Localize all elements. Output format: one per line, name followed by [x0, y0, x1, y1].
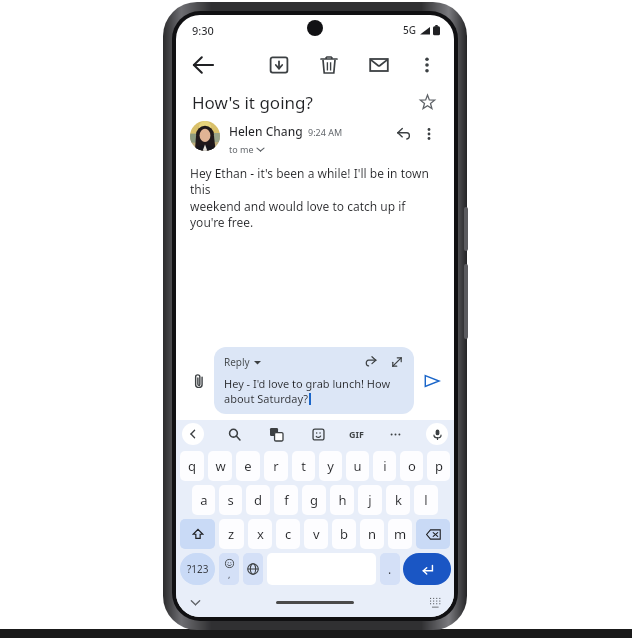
staticText: GIF	[349, 428, 364, 440]
button[interactable]: b	[332, 519, 356, 549]
staticText: weekend and would love to catch up if yo…	[190, 198, 440, 231]
button[interactable]: Shift	[180, 519, 215, 549]
staticText: c	[285, 525, 292, 543]
staticText: Helen Chang	[229, 123, 303, 139]
staticText: b	[340, 525, 348, 543]
staticText: 5G	[403, 23, 416, 37]
button[interactable]: Send	[418, 367, 446, 395]
staticText: n	[368, 525, 377, 543]
button[interactable]: Star	[414, 89, 440, 115]
button[interactable]: Emoji	[219, 553, 239, 585]
button[interactable]: j	[358, 485, 382, 515]
staticText: m	[394, 525, 407, 543]
staticText: Hey - I'd love to grab lunch! How	[224, 376, 391, 391]
button[interactable]: GIF	[349, 423, 364, 445]
button[interactable]: m	[388, 519, 412, 549]
staticText: to me	[229, 143, 254, 155]
button[interactable]: Mark unread	[364, 50, 394, 80]
staticText: o	[408, 457, 416, 475]
button[interactable]: Change language	[243, 553, 263, 585]
button[interactable]: Keyboard settings	[424, 591, 446, 613]
button[interactable]: l	[414, 485, 438, 515]
staticText: 9:30	[192, 23, 214, 38]
button[interactable]: s	[219, 485, 242, 515]
button[interactable]: n	[360, 519, 384, 549]
button[interactable]: Delete	[314, 50, 344, 80]
staticText: How's it going?	[192, 91, 313, 114]
staticText: e	[244, 457, 252, 475]
staticText: s	[227, 491, 234, 509]
button[interactable]: Attach file	[186, 368, 212, 394]
button[interactable]: z	[219, 519, 244, 549]
staticText: z	[228, 525, 235, 543]
staticText: p	[435, 457, 443, 475]
button[interactable]: h	[330, 485, 354, 515]
button[interactable]: u	[346, 451, 369, 481]
button[interactable]: f	[274, 485, 298, 515]
button[interactable]: x	[248, 519, 272, 549]
button[interactable]: d	[246, 485, 270, 515]
button[interactable]: Voice input	[426, 423, 448, 445]
button[interactable]: Reply	[390, 121, 416, 147]
staticText: l	[424, 491, 428, 509]
staticText: v	[313, 525, 320, 543]
button[interactable]: Archive	[264, 50, 294, 80]
button[interactable]: o	[400, 451, 423, 481]
button[interactable]: More	[384, 423, 406, 445]
button[interactable]: i	[373, 451, 396, 481]
staticText: w	[215, 457, 226, 475]
button[interactable]: Back	[182, 423, 204, 445]
button[interactable]: Hide keyboard	[184, 591, 206, 613]
button[interactable]: r	[264, 451, 288, 481]
button[interactable]: to me	[229, 143, 264, 155]
button[interactable]: w	[208, 451, 232, 481]
button[interactable]: Stickers	[307, 423, 329, 445]
button[interactable]: Back	[188, 50, 218, 80]
staticText: Hey Ethan - it's been a while! I'll be i…	[190, 165, 440, 198]
staticText: Reply	[224, 355, 250, 369]
button[interactable]: q	[180, 451, 204, 481]
button[interactable]: e	[236, 451, 260, 481]
button[interactable]: y	[319, 451, 342, 481]
staticText: a	[200, 491, 208, 509]
staticText: .	[388, 561, 392, 577]
button[interactable]: Reply	[214, 347, 414, 414]
staticText: f	[284, 491, 289, 509]
button[interactable]: More options	[416, 121, 442, 147]
staticText: q	[188, 457, 196, 475]
staticText: i	[383, 457, 387, 475]
staticText: ,	[228, 568, 231, 580]
staticText: u	[353, 457, 362, 475]
staticText: k	[395, 491, 402, 509]
staticText: 9:24 AM	[308, 126, 343, 138]
staticText: y	[327, 457, 334, 475]
button[interactable]: t	[292, 451, 315, 481]
staticText: j	[368, 491, 372, 509]
staticText: g	[310, 491, 318, 509]
staticText: d	[254, 491, 262, 509]
button[interactable]: Enter	[403, 553, 451, 585]
button[interactable]: More options	[412, 50, 442, 80]
button[interactable]: Expand	[388, 353, 406, 371]
staticText: h	[338, 491, 347, 509]
staticText: t	[301, 457, 306, 475]
button[interactable]: .	[380, 553, 400, 585]
button[interactable]: Translate	[265, 423, 287, 445]
staticText: ?123	[187, 562, 209, 576]
button[interactable]: k	[386, 485, 410, 515]
staticText: x	[257, 525, 264, 543]
button[interactable]: a	[192, 485, 215, 515]
staticText: r	[273, 457, 279, 475]
button[interactable]: v	[304, 519, 328, 549]
button[interactable]: Backspace	[416, 519, 450, 549]
staticText: about Saturday?	[224, 391, 309, 406]
button[interactable]: p	[427, 451, 450, 481]
button[interactable]: Forward	[362, 353, 380, 371]
button[interactable]: g	[302, 485, 326, 515]
button[interactable]: Search	[223, 423, 245, 445]
button[interactable]: c	[276, 519, 300, 549]
button[interactable]: ?123	[180, 553, 215, 585]
